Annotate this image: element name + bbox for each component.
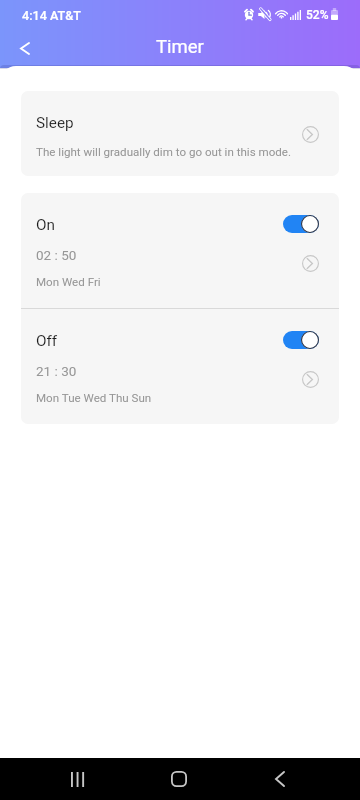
- staticText: Sleep: [36, 114, 74, 132]
- button[interactable]: Home: [159, 758, 199, 800]
- staticText: 21 : 30: [36, 363, 77, 379]
- button[interactable]: Toggle timer: [283, 331, 319, 349]
- staticText: Mon Wed Fri: [36, 275, 101, 289]
- staticText: The light will gradually dim to go out i…: [36, 145, 292, 159]
- staticText: 4:14 AT&T: [22, 8, 81, 23]
- button[interactable]: Back: [9, 32, 41, 64]
- button[interactable]: Back: [260, 758, 300, 800]
- button[interactable]: Open details: [302, 371, 319, 388]
- staticText: Mon Tue Wed Thu Sun: [36, 391, 152, 405]
- button[interactable]: Toggle timer: [283, 215, 319, 233]
- button[interactable]: Off: [21, 309, 339, 424]
- staticText: On: [36, 216, 55, 234]
- button[interactable]: Sleep: [21, 91, 339, 176]
- button[interactable]: Open details: [302, 126, 319, 143]
- staticText: 52%: [306, 8, 329, 22]
- staticText: 02 : 50: [36, 247, 77, 263]
- button[interactable]: On: [21, 193, 339, 308]
- button[interactable]: Open details: [302, 255, 319, 272]
- staticText: Timer: [156, 36, 204, 58]
- button[interactable]: Recent apps: [58, 758, 98, 800]
- staticText: Off: [36, 332, 58, 350]
